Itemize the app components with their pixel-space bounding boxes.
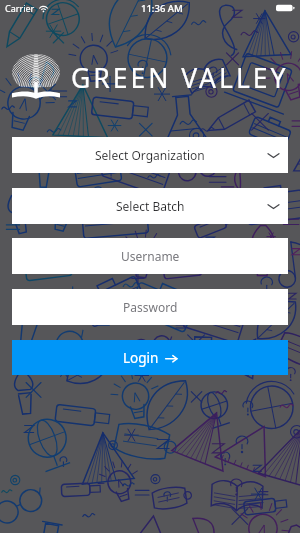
button[interactable]: Login xyxy=(12,340,288,375)
staticText: Username xyxy=(121,248,180,264)
button[interactable]: Select Batch xyxy=(12,188,288,224)
staticText: 11:36 AM xyxy=(141,2,183,15)
staticText: Login xyxy=(123,349,159,367)
button[interactable]: Select Organization xyxy=(12,137,288,173)
staticText: Carrier xyxy=(5,2,35,14)
button[interactable]: Password xyxy=(12,289,288,325)
staticText: GREEN VALLEY xyxy=(71,60,289,96)
staticText: Select Batch xyxy=(116,198,185,214)
staticText: Password xyxy=(123,299,178,315)
staticText: Select Organization xyxy=(95,147,205,163)
button[interactable]: Username xyxy=(12,238,288,274)
